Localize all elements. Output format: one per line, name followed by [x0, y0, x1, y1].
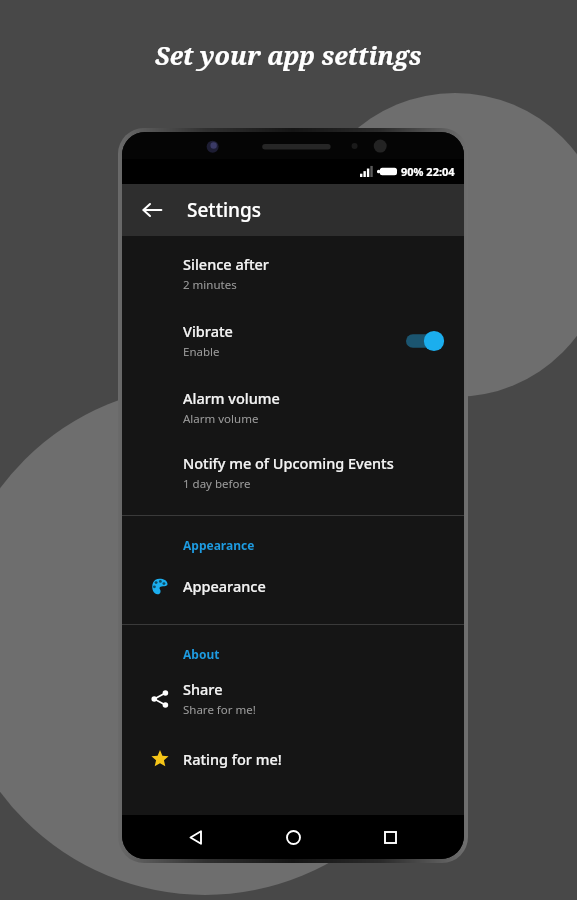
staticText: Appearance	[183, 537, 255, 553]
staticText: Set your app settings	[155, 38, 422, 72]
button[interactable]: Back	[130, 188, 174, 232]
staticText: Alarm volume	[183, 411, 259, 427]
staticText: Silence after	[183, 254, 269, 274]
button[interactable]: Share	[122, 679, 464, 718]
staticText: Vibrate	[183, 321, 233, 341]
staticText: About	[183, 646, 220, 662]
button[interactable]: Vibrate	[122, 319, 464, 362]
button[interactable]: Back	[173, 815, 219, 859]
staticText: Rating for me!	[183, 749, 282, 769]
staticText: Alarm volume	[183, 388, 280, 408]
button[interactable]: Notify me of Upcoming Events	[122, 451, 464, 494]
staticText: Share for me!	[183, 702, 256, 718]
button[interactable]: Appearance	[122, 569, 464, 603]
button[interactable]: Recent apps	[367, 815, 413, 859]
staticText: Notify me of Upcoming Events	[183, 453, 394, 473]
button[interactable]: Home	[270, 815, 316, 859]
button[interactable]: Silence after	[122, 252, 464, 295]
staticText: Enable	[183, 344, 220, 360]
staticText: 1 day before	[183, 476, 251, 492]
staticText: Appearance	[183, 576, 266, 596]
button[interactable]: Vibrate toggle	[406, 330, 446, 352]
staticText: Share	[183, 679, 223, 699]
staticText: 2 minutes	[183, 277, 237, 293]
staticText: Settings	[187, 197, 261, 223]
button[interactable]: Rating for me!	[122, 742, 464, 776]
staticText: 90% 22:04	[401, 164, 455, 179]
button[interactable]: Alarm volume	[122, 386, 464, 429]
